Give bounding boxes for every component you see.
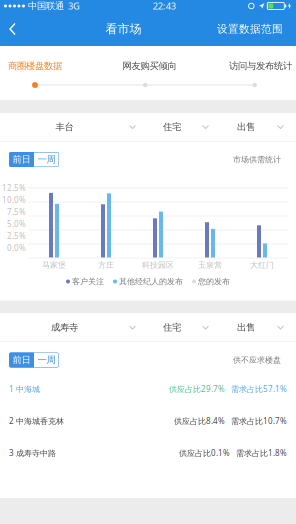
staticText: 访问与发布统计 (229, 60, 292, 72)
button[interactable]: 住宅 (142, 313, 215, 341)
button[interactable]: 设置数据范围 (217, 12, 296, 46)
staticText: 1 中海城 (9, 384, 40, 394)
staticText: 12.5% (2, 183, 26, 193)
button[interactable]: 前日 (9, 152, 34, 167)
staticText: 22:43 (153, 0, 176, 12)
staticText: 10.0% (2, 195, 26, 205)
button[interactable]: 访问与发布统计 (229, 57, 292, 75)
staticText: 一周 (37, 154, 55, 165)
staticText: 2.5% (7, 231, 26, 241)
staticText: 科技园区 (142, 260, 174, 270)
staticText: 需求占比57.1% (231, 384, 287, 394)
staticText: 客户关注 (70, 277, 104, 286)
staticText: 玉泉营 (198, 260, 222, 270)
staticText: 成寿寺 (51, 322, 78, 333)
button[interactable]: 出售 (215, 313, 290, 341)
button[interactable]: 2 中海城香克林 (0, 405, 296, 437)
staticText: 住宅 (163, 121, 181, 133)
staticText: 您的发布 (196, 277, 230, 286)
staticText: 中国联通 (25, 0, 64, 12)
staticText: 一周 (37, 354, 55, 366)
button[interactable]: 出售 (215, 113, 290, 141)
staticText: 出售 (237, 322, 255, 333)
staticText: 前日 (12, 354, 30, 366)
staticText: 供应占比0.1% (179, 448, 230, 458)
button[interactable]: 前日 (9, 352, 34, 367)
staticText: 出售 (237, 121, 255, 133)
staticText: 2 中海城香克林 (9, 416, 64, 426)
staticText: 网友购买倾向 (122, 60, 176, 72)
staticText: 大红门 (250, 260, 274, 270)
button[interactable]: 1 中海城 (0, 373, 296, 405)
staticText: 前日 (12, 154, 30, 165)
button[interactable]: 一周 (34, 352, 59, 367)
staticText: 5.0% (7, 219, 26, 229)
staticText: 供应占比29.7% (169, 384, 225, 394)
staticText: 设置数据范围 (217, 22, 283, 35)
staticText: 需求占比10.7% (231, 416, 287, 426)
button[interactable]: 3 成寿寺中路 (0, 437, 296, 469)
button[interactable]: Back (0, 12, 30, 46)
staticText: 商圈楼盘数据 (8, 60, 62, 72)
button[interactable]: 住宅 (142, 113, 215, 141)
button[interactable]: 一周 (34, 152, 59, 167)
staticText: 供应占比8.4% (174, 416, 225, 426)
staticText: 市场供需统计 (233, 155, 281, 164)
button[interactable]: 成寿寺 (0, 313, 142, 341)
staticText: 其他经纪人的发布 (117, 277, 183, 286)
staticText: 需求占比1.8% (236, 448, 287, 458)
staticText: 住宅 (163, 322, 181, 333)
staticText: 看市场 (105, 22, 141, 36)
staticText: 3 成寿寺中路 (9, 448, 56, 458)
staticText: 马家堡 (42, 260, 66, 270)
staticText: 7.5% (7, 207, 26, 217)
staticText: 0.0% (7, 243, 26, 253)
staticText: 供不应求楼盘 (233, 355, 281, 365)
button[interactable]: 丰台 (0, 113, 142, 141)
staticText: 丰台 (55, 121, 73, 133)
button[interactable]: 商圈楼盘数据 (0, 57, 70, 75)
button[interactable]: 网友购买倾向 (70, 57, 229, 75)
staticText: 3G (64, 0, 80, 12)
staticText: 方庄 (98, 260, 114, 270)
